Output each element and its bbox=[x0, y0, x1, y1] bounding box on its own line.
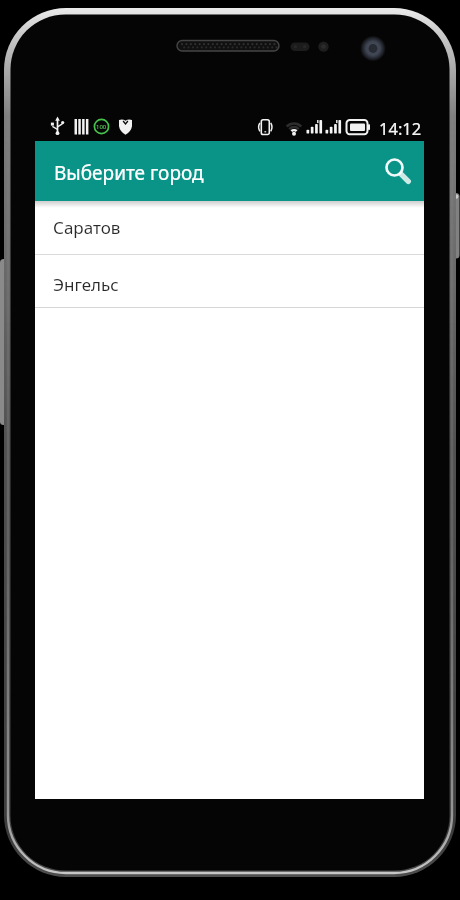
button[interactable] bbox=[370, 147, 418, 195]
staticText: 100 bbox=[96, 123, 107, 131]
staticText: Выберите город bbox=[54, 160, 204, 186]
staticText: Саратов bbox=[53, 216, 121, 239]
button[interactable]: Саратов bbox=[35, 201, 424, 254]
staticText: 14:12 bbox=[379, 117, 422, 139]
staticText: Энгельс bbox=[53, 273, 119, 296]
button[interactable]: Энгельс bbox=[35, 255, 424, 307]
